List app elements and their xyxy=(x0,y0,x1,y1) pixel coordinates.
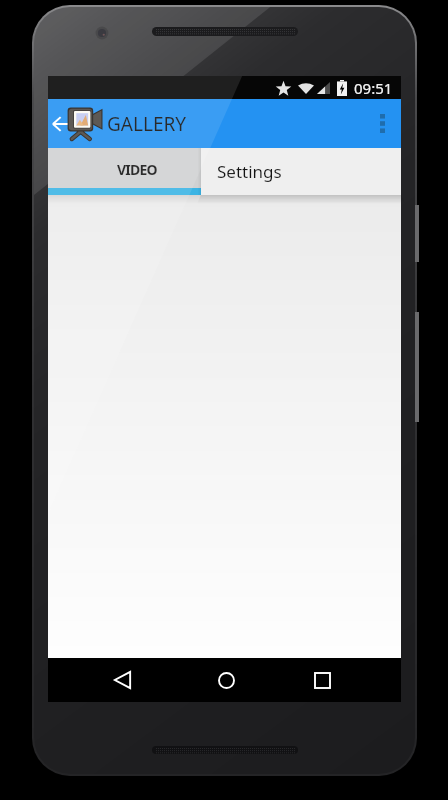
staticText: GALLERY xyxy=(107,111,187,137)
button[interactable]: Recent apps xyxy=(300,658,344,702)
button[interactable]: Settings xyxy=(201,148,401,195)
button[interactable]: More options xyxy=(363,99,401,148)
button[interactable]: VIDEO xyxy=(48,148,225,188)
button[interactable]: Home xyxy=(204,658,248,702)
staticText: VIDEO xyxy=(117,160,157,179)
button[interactable]: Back xyxy=(100,658,144,702)
staticText: 09:51 xyxy=(354,78,393,98)
staticText: Settings xyxy=(217,160,282,183)
button[interactable]: Navigate up xyxy=(48,99,104,148)
